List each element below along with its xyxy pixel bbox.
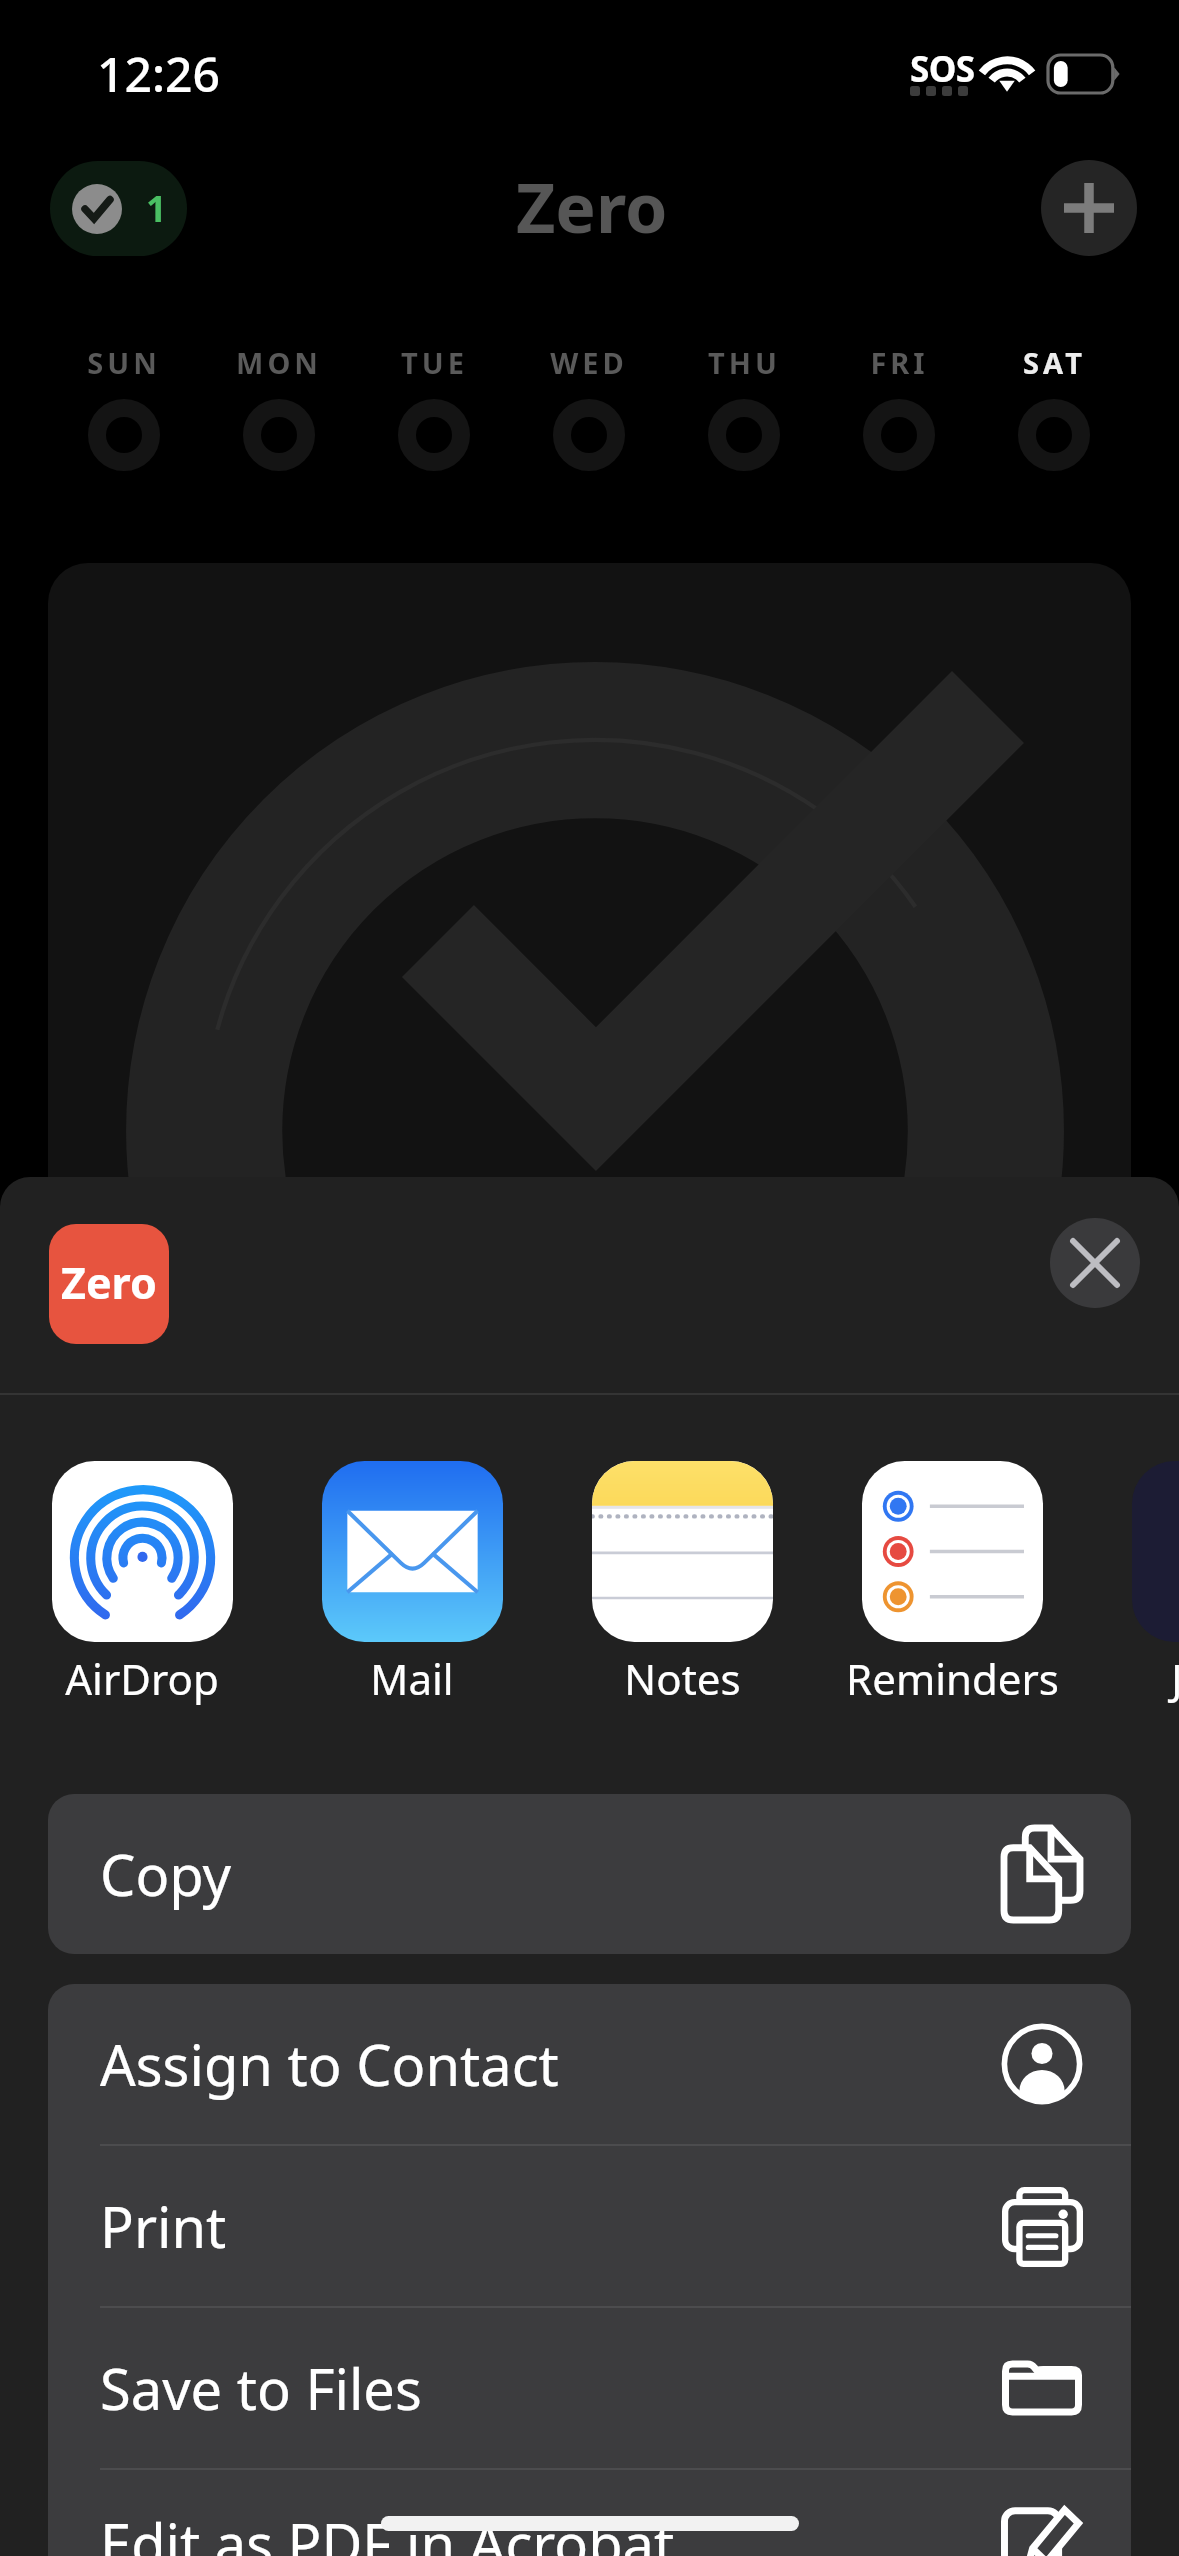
staticText: Notes: [624, 1650, 741, 1707]
staticText: FRI: [870, 343, 929, 382]
staticText: Mail: [370, 1650, 454, 1707]
button[interactable]: Print: [48, 2146, 1131, 2306]
button[interactable]: AirDrop: [7, 1461, 277, 1707]
button[interactable]: Mail: [277, 1461, 547, 1707]
staticText: SOS: [910, 45, 975, 93]
staticText: Reminders: [846, 1650, 1059, 1707]
staticText: 12:26: [97, 41, 220, 106]
button[interactable]: Assign to Contact: [48, 1984, 1131, 2144]
staticText: Edit as PDF in Acrobat: [100, 2505, 675, 2556]
staticText: Copy: [100, 1836, 232, 1912]
button[interactable]: SUN: [54, 343, 194, 471]
staticText: MON: [236, 343, 322, 382]
button[interactable]: Notes: [547, 1461, 817, 1707]
button[interactable]: Edit as PDF in Acrobat: [48, 2470, 1131, 2556]
staticText: Jump: [1171, 1650, 1179, 1707]
button[interactable]: FRI: [829, 343, 969, 471]
staticText: SAT: [1023, 343, 1086, 382]
button[interactable]: THU: [674, 343, 814, 471]
button[interactable]: TUE: [364, 343, 504, 471]
button[interactable]: Reminders: [817, 1461, 1087, 1707]
staticText: Zero: [61, 1253, 157, 1312]
staticText: THU: [708, 343, 781, 382]
button[interactable]: [48, 563, 1131, 1463]
staticText: 1: [146, 184, 167, 233]
staticText: Zero: [516, 160, 668, 253]
staticText: TUE: [401, 343, 468, 382]
button[interactable]: Jump: [1087, 1461, 1179, 1707]
staticText: Assign to Contact: [100, 2026, 559, 2102]
staticText: SUN: [87, 343, 161, 382]
button[interactable]: Close: [1050, 1218, 1140, 1308]
button[interactable]: Zero: [49, 1224, 169, 1344]
staticText: WED: [550, 343, 628, 382]
button[interactable]: 1 task completed streak: [50, 161, 187, 256]
button[interactable]: Copy: [48, 1794, 1131, 1954]
button[interactable]: MON: [209, 343, 349, 471]
button[interactable]: SAT: [984, 343, 1124, 471]
button[interactable]: Save to Files: [48, 2308, 1131, 2468]
staticText: Save to Files: [100, 2350, 422, 2426]
staticText: Print: [100, 2188, 227, 2264]
staticText: AirDrop: [65, 1650, 219, 1707]
button[interactable]: Add task: [1041, 160, 1137, 256]
button[interactable]: WED: [519, 343, 659, 471]
